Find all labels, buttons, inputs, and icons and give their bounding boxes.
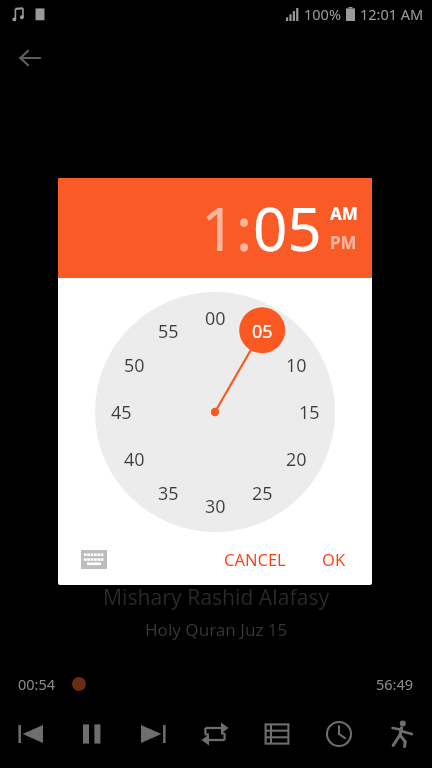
staticText: 35 [158, 481, 179, 505]
staticText: 45 [111, 400, 132, 424]
staticText: 20 [286, 447, 307, 471]
button[interactable]: CANCEL [224, 548, 286, 570]
staticText: 00 [205, 306, 226, 330]
staticText: AM [330, 202, 358, 225]
staticText: 12:01 AM [360, 4, 424, 24]
staticText: 40 [124, 447, 145, 471]
button[interactable] [95, 292, 335, 532]
staticText: 05 [253, 187, 322, 269]
staticText: Mishary Rashid Alafasy [103, 583, 330, 612]
staticText: 50 [124, 353, 145, 377]
button[interactable]: 1 [201, 187, 236, 269]
staticText: CANCEL [224, 548, 286, 570]
button[interactable]: Switch to keyboard input [74, 539, 114, 579]
button[interactable]: Walk [370, 706, 432, 762]
staticText: 05 [252, 319, 273, 343]
button[interactable]: 05 [253, 187, 322, 269]
staticText: 100% [304, 4, 341, 24]
button[interactable]: Playlist [246, 706, 308, 762]
staticText: Holy Quran Juz 15 [145, 618, 288, 641]
button[interactable]: AM [330, 202, 358, 225]
staticText: 1 [201, 187, 236, 269]
staticText: 25 [252, 481, 273, 505]
button[interactable]: Pause [61, 706, 122, 762]
staticText: 15 [299, 400, 320, 424]
staticText: 00:54 [18, 674, 56, 694]
button[interactable]: Back [8, 36, 52, 80]
button[interactable]: OK [322, 548, 346, 570]
staticText: 30 [205, 494, 226, 518]
staticText: OK [322, 548, 346, 570]
button[interactable]: Sleep timer [308, 706, 370, 762]
staticText: 56:49 [376, 674, 414, 694]
button[interactable]: Repeat [184, 706, 246, 762]
staticText: 10 [286, 353, 307, 377]
button[interactable]: Previous [0, 706, 61, 762]
button[interactable]: Next [122, 706, 184, 762]
button[interactable]: PM [330, 231, 357, 254]
staticText: : [236, 187, 253, 269]
staticText: 55 [158, 319, 179, 343]
staticText: PM [330, 231, 357, 254]
